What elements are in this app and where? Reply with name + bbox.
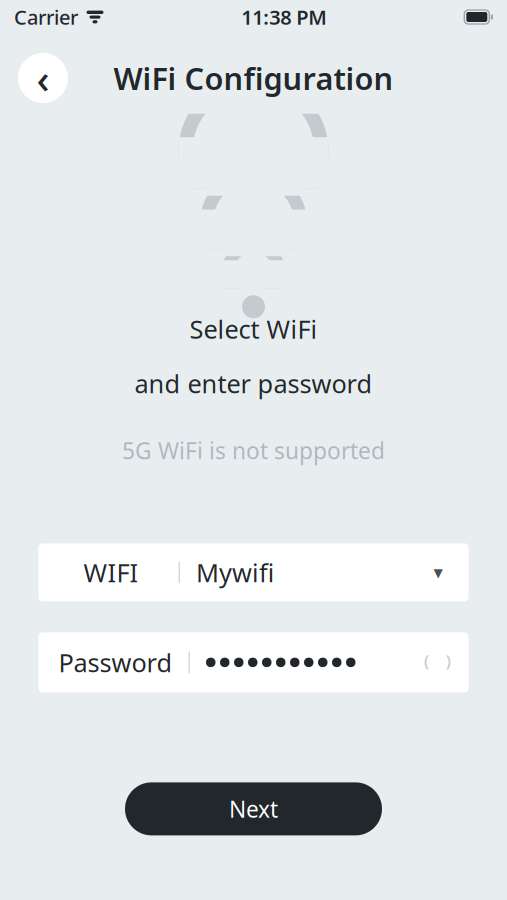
staticText: Carrier [14,4,78,30]
button[interactable]: Next [125,782,382,835]
staticText: Next [229,794,278,824]
staticText: WIFI [83,556,138,589]
staticText: 5G WiFi is not supported [122,435,385,465]
button[interactable]: WIFI [38,543,468,601]
staticText: ▾ [433,562,442,583]
staticText: Mywifi [196,556,274,589]
staticText: ‹ [36,51,49,104]
staticText: WiFi Configuration [113,58,393,98]
button[interactable]: Back [18,53,68,103]
button[interactable]: Password [38,632,468,692]
staticText: Select WiFi [189,312,317,346]
staticText: 11:38 PM [241,4,327,30]
staticText: and enter password [134,367,372,400]
staticText: Password [58,646,172,679]
